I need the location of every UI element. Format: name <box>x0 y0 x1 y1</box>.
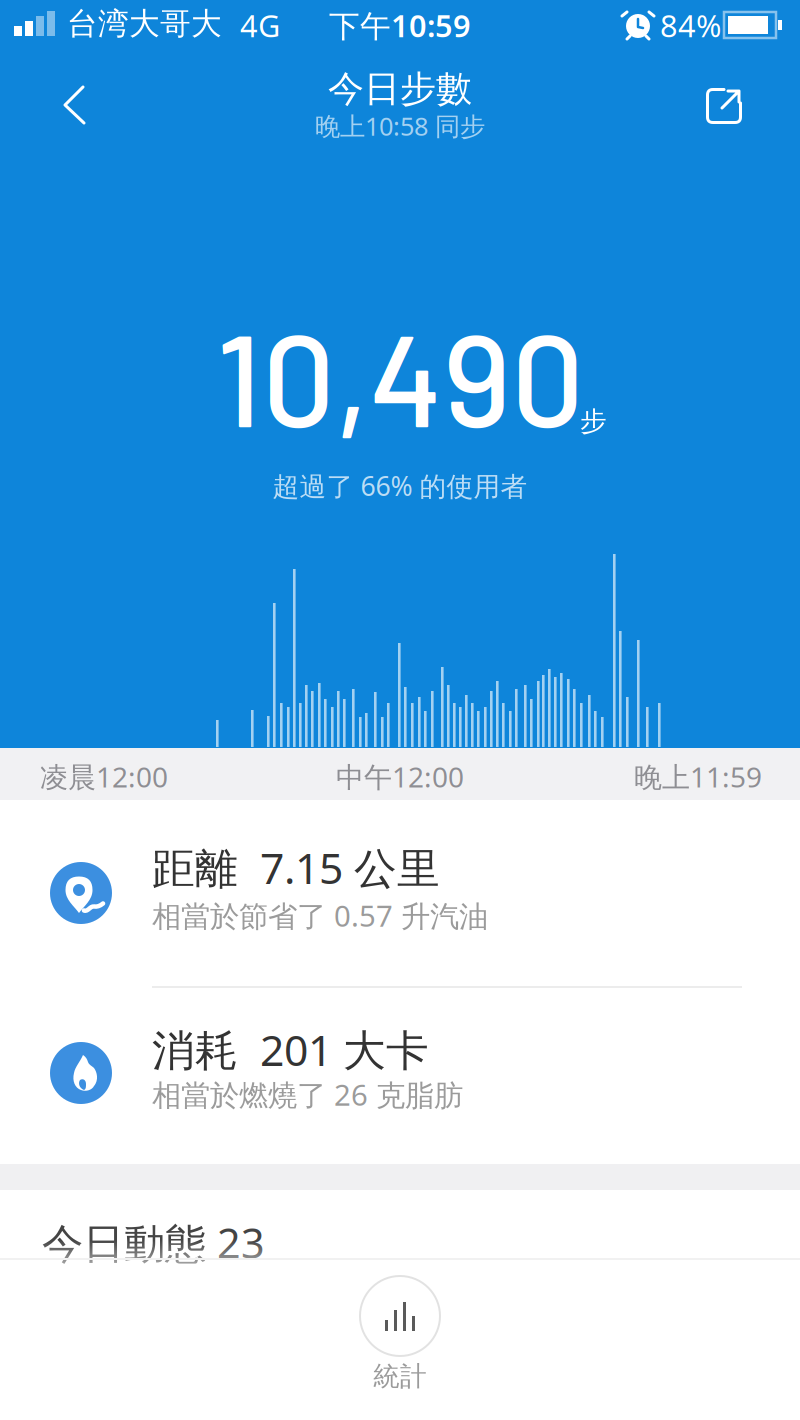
staticText: 相當於節省了 0.57 升汽油 <box>152 896 488 935</box>
button[interactable] <box>706 88 742 124</box>
staticText: 晚上11:59 <box>634 758 762 795</box>
button[interactable]: 距離 7.15 公里 <box>0 0 800 186</box>
staticText: 4G <box>240 5 280 46</box>
staticText: 中午12:00 <box>336 758 464 795</box>
button[interactable]: 消耗 201 大卡 <box>0 0 800 176</box>
button[interactable]: 統計 <box>345 1276 455 1393</box>
staticText: 84% <box>660 5 721 46</box>
staticText: 晚上10:58 同步 <box>315 109 485 143</box>
staticText: 下午10:59 <box>329 5 471 46</box>
staticText: 統計 <box>373 1360 427 1393</box>
staticText: 今日步數 <box>328 67 472 111</box>
staticText: 凌晨12:00 <box>40 758 168 795</box>
staticText: 距離 7.15 公里 <box>152 839 440 896</box>
staticText: 相當於燃燒了 26 克脂肪 <box>152 1075 463 1114</box>
staticText: 步 <box>580 405 607 438</box>
button[interactable] <box>45 80 105 130</box>
staticText: 台湾大哥大 <box>67 5 222 43</box>
staticText: 10,490 <box>216 298 584 453</box>
staticText: 消耗 201 大卡 <box>152 1021 429 1078</box>
staticText: 今日動態 23 <box>42 1215 265 1270</box>
staticText: 超過了 66% 的使用者 <box>272 468 527 503</box>
